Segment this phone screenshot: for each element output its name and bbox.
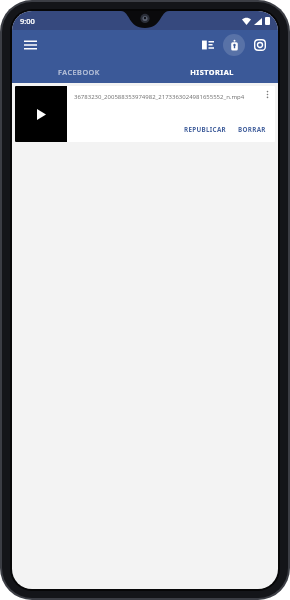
button[interactable]: REPUBLICAR	[180, 122, 231, 137]
button[interactable]: Queue list	[197, 34, 219, 56]
button[interactable]: Open navigation drawer	[19, 34, 41, 56]
staticText: FACEBOOK	[58, 67, 100, 77]
button[interactable]: Instagram	[249, 34, 271, 56]
button[interactable]: More options	[259, 86, 275, 102]
button[interactable]: FACEBOOK	[12, 60, 145, 83]
staticText: BORRAR	[238, 125, 266, 134]
button[interactable]: BORRAR	[234, 122, 270, 137]
staticText: 9:00	[20, 16, 35, 26]
button[interactable]: 36783230_200588353974982_217336302498165…	[15, 86, 275, 142]
button[interactable]: Bot account	[223, 34, 245, 56]
staticText: 36783230_200588353974982_217336302498165…	[74, 93, 258, 101]
staticText: HISTORIAL	[190, 67, 234, 77]
staticText: REPUBLICAR	[184, 125, 227, 134]
button[interactable]: HISTORIAL	[145, 60, 278, 83]
